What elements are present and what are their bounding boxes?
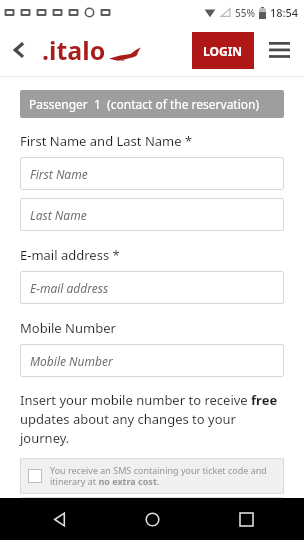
button[interactable]: Back	[0, 24, 38, 76]
button[interactable]: Last Name	[20, 198, 284, 231]
button[interactable]: Italo home	[42, 33, 142, 67]
staticText: .italo	[42, 33, 106, 67]
staticText: 18:54	[270, 5, 299, 20]
staticText: E-mail address *	[20, 246, 120, 264]
button[interactable]: Menu	[254, 24, 304, 76]
button[interactable]: Passenger 1 (contact of the reservation)	[20, 90, 284, 118]
staticText: First Name and Last Name *	[20, 132, 193, 150]
button[interactable]: Back	[24, 498, 94, 540]
button[interactable]: LOGIN	[192, 32, 254, 69]
button[interactable]: Home	[117, 498, 187, 540]
staticText: 55%	[235, 6, 255, 20]
staticText: E-mail address	[30, 280, 109, 296]
staticText: LOGIN	[203, 43, 243, 59]
button[interactable]: Mobile Number	[20, 344, 284, 377]
staticText: Mobile Number	[20, 319, 116, 337]
button[interactable]: You receive an SMS containing your ticke…	[20, 458, 284, 494]
button[interactable]: E-mail address	[20, 271, 284, 304]
staticText: You receive an SMS containing your ticke…	[50, 464, 276, 488]
button[interactable]: First Name	[20, 157, 284, 190]
staticText: Passenger 1 (contact of the reservation)	[29, 96, 260, 112]
staticText: Last Name	[30, 207, 87, 223]
button[interactable]: Recent apps	[211, 498, 281, 540]
staticText: Insert your mobile number to receive fre…	[20, 391, 284, 447]
staticText: Mobile Number	[30, 353, 113, 369]
staticText: First Name	[30, 166, 88, 182]
